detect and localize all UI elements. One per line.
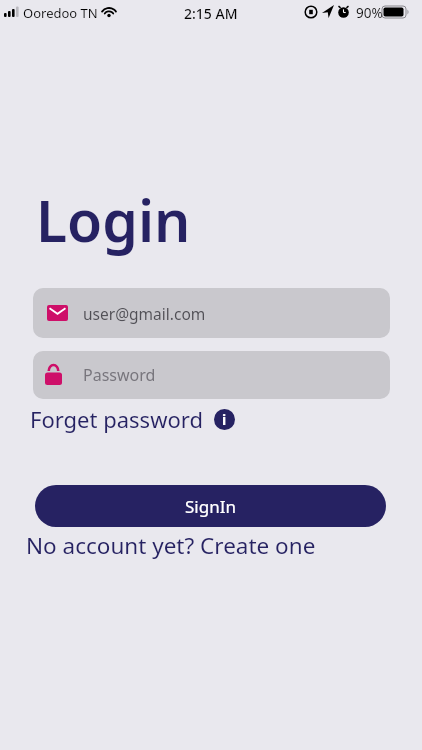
staticText: Forget password (30, 404, 203, 434)
staticText: SignIn (185, 495, 236, 518)
staticText: 2:15 AM (184, 4, 238, 23)
staticText: Ooredoo TN (23, 4, 98, 22)
button[interactable]: No account yet? Create one (26, 530, 316, 561)
button[interactable]: SignIn (35, 485, 386, 527)
staticText: i (222, 410, 227, 429)
button[interactable]: Password (33, 351, 390, 399)
staticText: 90% (356, 4, 383, 22)
button[interactable]: user@gmail.com (33, 288, 390, 338)
button[interactable]: Forget password (30, 404, 235, 434)
staticText: user@gmail.com (83, 303, 206, 324)
staticText: Password (83, 364, 156, 386)
staticText: Login (36, 181, 191, 259)
